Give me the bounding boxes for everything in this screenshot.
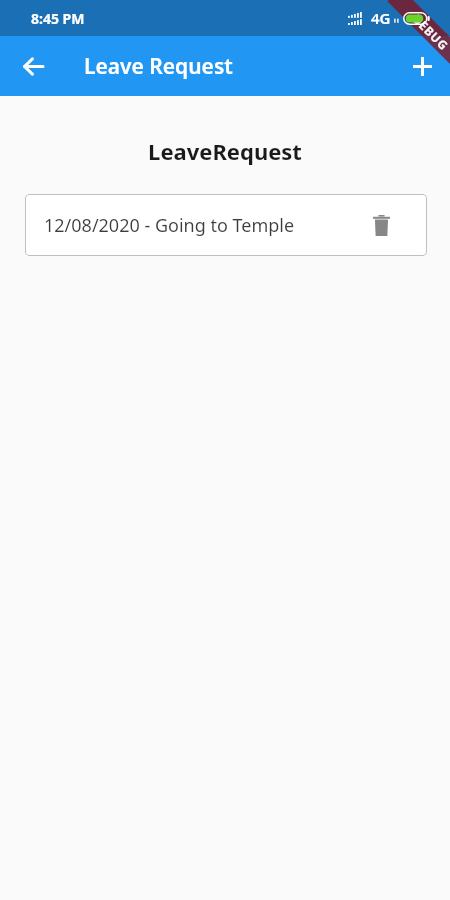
- staticText: 4G: [371, 8, 391, 28]
- staticText: 8:45 PM: [31, 9, 85, 28]
- staticText: DEBUG: [409, 10, 450, 54]
- button[interactable]: Back: [9, 42, 57, 90]
- button[interactable]: 12/08/2020 - Going to Temple: [25, 194, 427, 256]
- staticText: LeaveRequest: [0, 136, 450, 166]
- staticText: Leave Request: [84, 52, 233, 81]
- button[interactable]: Delete: [363, 207, 399, 243]
- staticText: 12/08/2020 - Going to Temple: [44, 213, 295, 238]
- button[interactable]: Add leave request: [398, 42, 446, 90]
